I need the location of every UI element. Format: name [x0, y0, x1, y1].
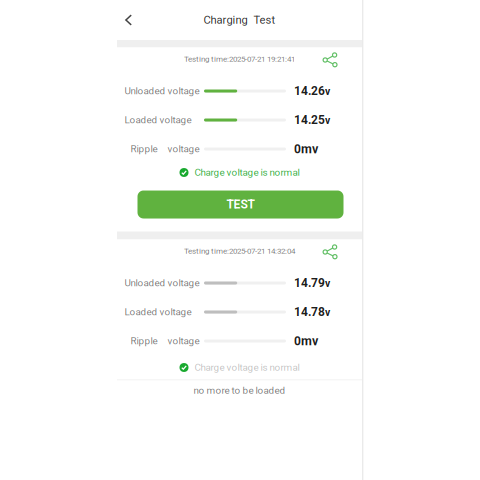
staticText: 14.25 [294, 113, 325, 127]
staticText: Unloaded voltage [124, 277, 199, 289]
staticText: mv [301, 142, 318, 156]
staticText: Charge voltage is normal [194, 362, 299, 373]
staticText: Testing time:2025-07-21 19:21:41 [184, 54, 295, 64]
staticText: Charge voltage is normal [194, 167, 299, 178]
staticText: Testing time:2025-07-21 14:32:04 [184, 246, 295, 256]
button[interactable]: Share [317, 239, 342, 264]
staticText: v [325, 306, 330, 319]
staticText: Ripple voltage [124, 143, 199, 155]
staticText: mv [301, 334, 318, 348]
staticText: Loaded voltage [124, 306, 191, 318]
button[interactable]: TEST [137, 190, 343, 218]
staticText: no more to be loaded [193, 385, 285, 396]
staticText: v [325, 85, 330, 98]
staticText: Loaded voltage [124, 114, 191, 126]
staticText: 14.78 [294, 305, 325, 319]
staticText: Charging Test [203, 13, 275, 26]
staticText: 14.79 [294, 276, 325, 290]
staticText: TEST [226, 197, 254, 212]
staticText: 0 [294, 142, 301, 156]
staticText: Unloaded voltage [124, 85, 199, 97]
staticText: 0 [294, 334, 301, 348]
button[interactable]: Share [317, 47, 342, 72]
staticText: v [325, 277, 330, 290]
staticText: 14.26 [294, 84, 325, 98]
button[interactable]: Back [120, 9, 137, 31]
staticText: v [325, 114, 330, 127]
staticText: Ripple voltage [124, 335, 199, 347]
